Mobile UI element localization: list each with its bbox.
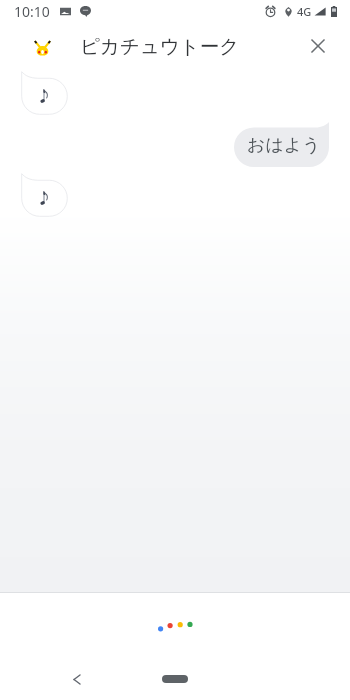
staticText: ピカチュウトーク xyxy=(80,34,240,59)
staticText: 10:10 xyxy=(14,2,50,21)
button[interactable]: Play voice message xyxy=(21,173,68,217)
button[interactable]: Back xyxy=(64,666,90,692)
button[interactable]: Close xyxy=(301,29,335,63)
staticText: 4G xyxy=(297,4,312,19)
button[interactable]: おはよう xyxy=(234,122,329,167)
staticText: おはよう xyxy=(247,134,321,157)
button[interactable]: Play voice message xyxy=(21,71,68,115)
button[interactable]: Home xyxy=(162,675,188,683)
